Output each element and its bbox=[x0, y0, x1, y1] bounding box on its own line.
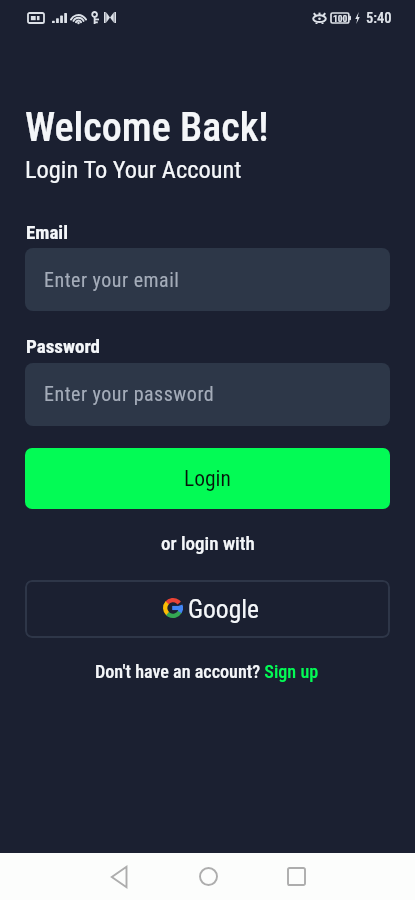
staticText: Don't have an account? Sign up bbox=[95, 661, 319, 682]
button[interactable]: Login bbox=[25, 448, 390, 509]
button[interactable]: Recent apps bbox=[273, 853, 319, 900]
staticText: Password bbox=[26, 335, 100, 357]
staticText: 5:40 bbox=[366, 10, 392, 27]
staticText: Enter your password bbox=[44, 382, 215, 405]
button[interactable]: Home bbox=[185, 853, 231, 900]
staticText: Google bbox=[188, 594, 260, 624]
button[interactable]: Back bbox=[96, 853, 142, 900]
button[interactable]: Enter your email bbox=[25, 248, 390, 311]
button[interactable]: Google bbox=[25, 580, 390, 638]
staticText: Email bbox=[26, 221, 68, 243]
staticText: 100 bbox=[333, 13, 348, 23]
button[interactable]: Don't have an account? Sign up bbox=[95, 661, 319, 682]
staticText: Login To Your Account bbox=[25, 155, 242, 184]
staticText: or login with bbox=[161, 532, 255, 554]
staticText: Login bbox=[184, 466, 231, 491]
staticText: Enter your email bbox=[44, 268, 180, 291]
button[interactable]: Enter your password bbox=[25, 363, 390, 426]
staticText: Welcome Back! bbox=[25, 104, 269, 151]
